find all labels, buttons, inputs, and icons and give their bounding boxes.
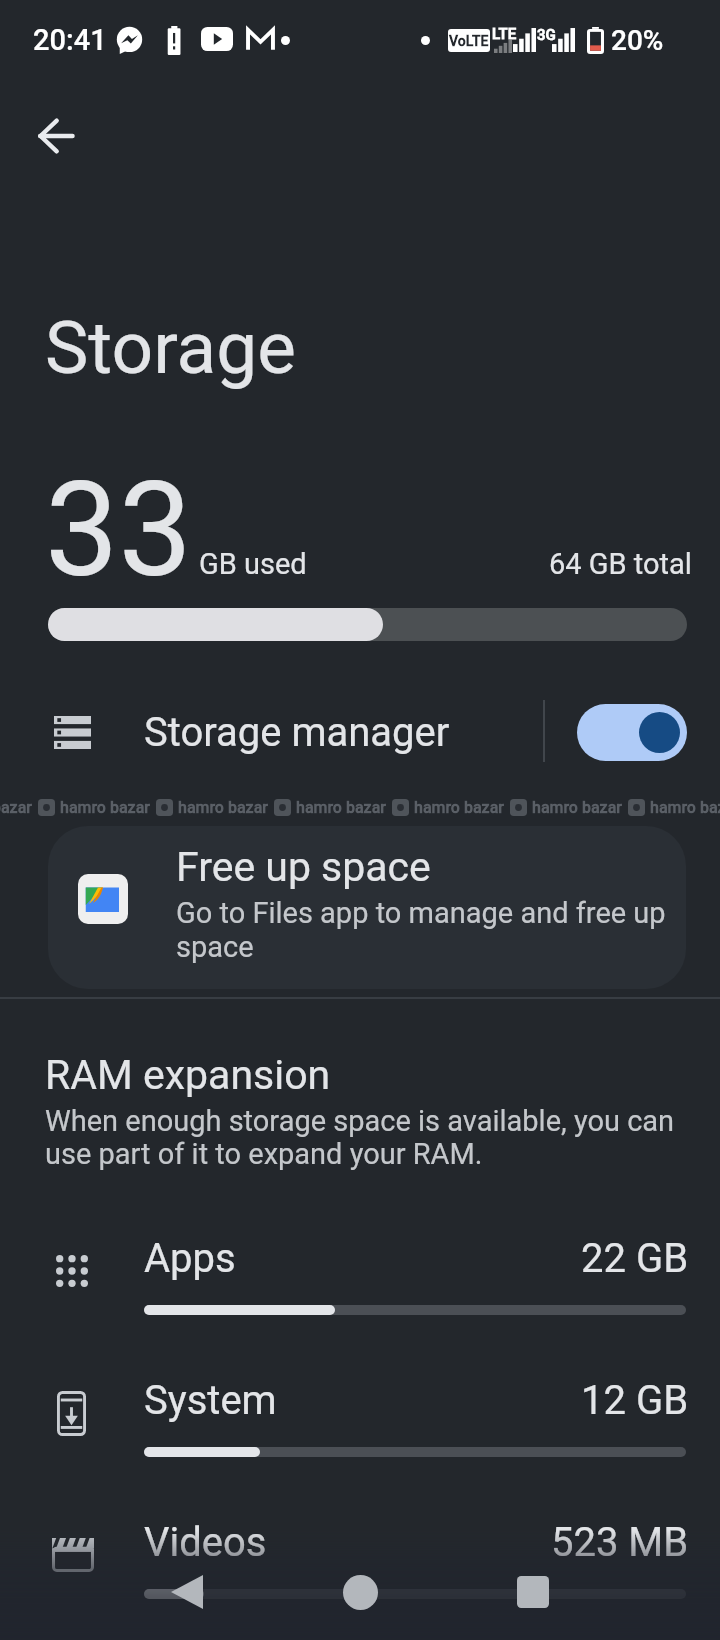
staticText: hamro bazar: [650, 798, 720, 817]
staticText: 20:41: [33, 23, 107, 57]
staticText: When enough storage space is available, …: [45, 1104, 675, 1171]
button[interactable]: Storage manager toggle: [549, 684, 720, 780]
button[interactable]: Videos: [0, 1475, 720, 1600]
button[interactable]: Back: [155, 1560, 219, 1624]
staticText: hamro bazar: [414, 798, 504, 817]
staticText: hamro bazar: [296, 798, 386, 817]
staticText: 523 MB: [551, 1519, 689, 1566]
staticText: Apps: [144, 1235, 236, 1282]
staticText: hamro bazar: [178, 798, 268, 817]
button[interactable]: Home: [328, 1560, 392, 1624]
button[interactable]: Recent apps: [501, 1560, 565, 1624]
button[interactable]: Back: [14, 94, 98, 178]
staticText: 12 GB: [581, 1377, 689, 1424]
staticText: 22 GB: [581, 1235, 689, 1282]
staticText: Go to Files app to manage and free up sp…: [176, 896, 666, 964]
button[interactable]: Apps: [0, 1191, 720, 1316]
button[interactable]: Free up space: [48, 826, 686, 989]
staticText: hamro bazar: [0, 798, 32, 817]
staticText: GB used: [199, 547, 307, 581]
staticText: VoLTE: [449, 33, 489, 49]
staticText: Videos: [144, 1519, 267, 1566]
button[interactable]: System: [0, 1333, 720, 1458]
staticText: 20%: [611, 24, 664, 57]
staticText: Free up space: [176, 843, 431, 891]
staticText: hamro bazar: [532, 798, 622, 817]
staticText: 33: [45, 453, 193, 607]
staticText: System: [144, 1377, 277, 1424]
staticText: Storage: [45, 305, 296, 391]
button[interactable]: Storage manager: [0, 684, 543, 780]
staticText: LTE: [492, 25, 517, 43]
staticText: hamro bazar: [60, 798, 150, 817]
staticText: RAM expansion: [45, 1051, 331, 1099]
staticText: Storage manager: [144, 709, 450, 756]
staticText: 64 GB total: [549, 547, 692, 581]
staticText: 3G: [537, 26, 556, 44]
